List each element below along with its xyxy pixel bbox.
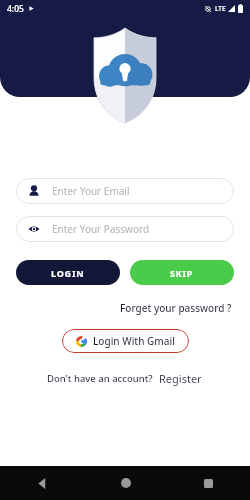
staticText: Enter Your Password xyxy=(52,222,150,236)
button[interactable]: SKIP xyxy=(130,260,234,285)
button[interactable]: Enter Your Email xyxy=(16,178,234,204)
button[interactable]: Register xyxy=(158,370,203,387)
staticText: Register xyxy=(159,371,202,386)
button[interactable]: Recent apps xyxy=(167,466,250,500)
staticText: LOGIN xyxy=(51,267,85,279)
staticText: Login With Gmail xyxy=(93,334,175,348)
staticText: SKIP xyxy=(170,267,194,279)
button[interactable]: Login With Gmail xyxy=(62,329,189,353)
staticText: Forget your password ? xyxy=(120,301,232,315)
staticText: Don't have an account? xyxy=(47,372,153,385)
button[interactable]: Forget your password ? xyxy=(118,299,234,317)
button[interactable]: LOGIN xyxy=(16,260,120,285)
staticText: 4:05 xyxy=(7,3,24,15)
button[interactable]: Home xyxy=(84,466,167,500)
button[interactable]: Back xyxy=(0,466,84,500)
button[interactable]: Enter Your Password xyxy=(16,216,234,242)
staticText: LTE xyxy=(215,4,226,13)
staticText: Enter Your Email xyxy=(52,184,130,198)
